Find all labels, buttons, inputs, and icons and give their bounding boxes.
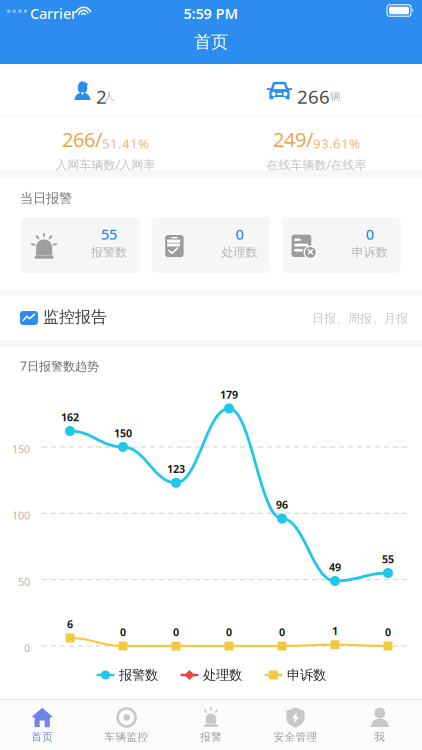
staticText: 100 xyxy=(12,508,30,522)
staticText: 首页 xyxy=(31,730,53,743)
staticText: 监控报告 xyxy=(43,307,107,327)
staticText: 人 xyxy=(104,90,115,103)
staticText: 162 xyxy=(61,410,79,424)
staticText: 55 xyxy=(101,224,117,244)
staticText: 50 xyxy=(18,575,30,589)
staticText: 55 xyxy=(382,552,394,566)
staticText: 0 xyxy=(173,625,179,639)
staticText: 249 xyxy=(273,126,306,153)
staticText: 266 xyxy=(62,126,95,153)
staticText: 车辆监控 xyxy=(105,730,149,743)
staticText: 150 xyxy=(114,426,132,440)
staticText: 0 xyxy=(226,625,232,639)
staticText: 6 xyxy=(67,617,73,631)
staticText: 93.61% xyxy=(313,134,360,152)
staticText: Carrier xyxy=(30,3,77,23)
staticText: 0 xyxy=(385,625,391,639)
button[interactable]: 车辆监控 xyxy=(84,700,169,750)
staticText: 0 xyxy=(366,224,374,244)
staticText: 96 xyxy=(276,498,288,512)
staticText: 报警数 xyxy=(91,245,127,260)
staticText: 申诉数 xyxy=(352,245,388,260)
staticText: 入网车辆数/入网率 xyxy=(55,157,155,172)
staticText: 辆 xyxy=(330,90,341,103)
staticText: 123 xyxy=(167,462,185,476)
staticText: 0 xyxy=(235,224,243,244)
staticText: 1 xyxy=(332,624,338,638)
staticText: 51.41% xyxy=(102,134,149,152)
button[interactable]: 我 xyxy=(338,700,422,750)
staticText: 我 xyxy=(374,730,385,743)
staticText: 0 xyxy=(120,625,126,639)
staticText: 49 xyxy=(329,560,341,574)
staticText: / xyxy=(306,126,313,153)
staticText: / xyxy=(95,126,102,153)
button[interactable]: 0 xyxy=(282,217,401,273)
button[interactable]: 日报、周报、月报 xyxy=(268,296,408,341)
staticText: 179 xyxy=(220,387,238,402)
staticText: 报警 xyxy=(200,730,222,743)
button[interactable]: 安全管理 xyxy=(253,700,338,750)
staticText: 当日报警 xyxy=(20,190,72,206)
staticText: 266 xyxy=(297,84,330,109)
staticText: 首页 xyxy=(194,31,228,53)
staticText: 5:59 PM xyxy=(183,3,238,23)
staticText: 150 xyxy=(12,442,30,456)
staticText: 报警数 xyxy=(119,667,158,683)
button[interactable]: 55 xyxy=(21,217,140,273)
staticText: 0 xyxy=(24,641,30,655)
staticText: 申诉数 xyxy=(287,667,326,683)
button[interactable]: 首页 xyxy=(0,700,84,750)
staticText: 安全管理 xyxy=(273,730,317,743)
staticText: 2 xyxy=(96,84,107,109)
staticText: 在线车辆数/在线率 xyxy=(266,157,366,172)
staticText: 0 xyxy=(279,625,285,639)
button[interactable]: 0 xyxy=(151,217,270,273)
staticText: 处理数 xyxy=(203,667,242,683)
button[interactable]: 报警 xyxy=(169,700,253,750)
staticText: 7日报警数趋势 xyxy=(20,358,99,374)
staticText: 处理数 xyxy=(221,245,257,260)
staticText: 日报、周报、月报 xyxy=(312,311,408,326)
